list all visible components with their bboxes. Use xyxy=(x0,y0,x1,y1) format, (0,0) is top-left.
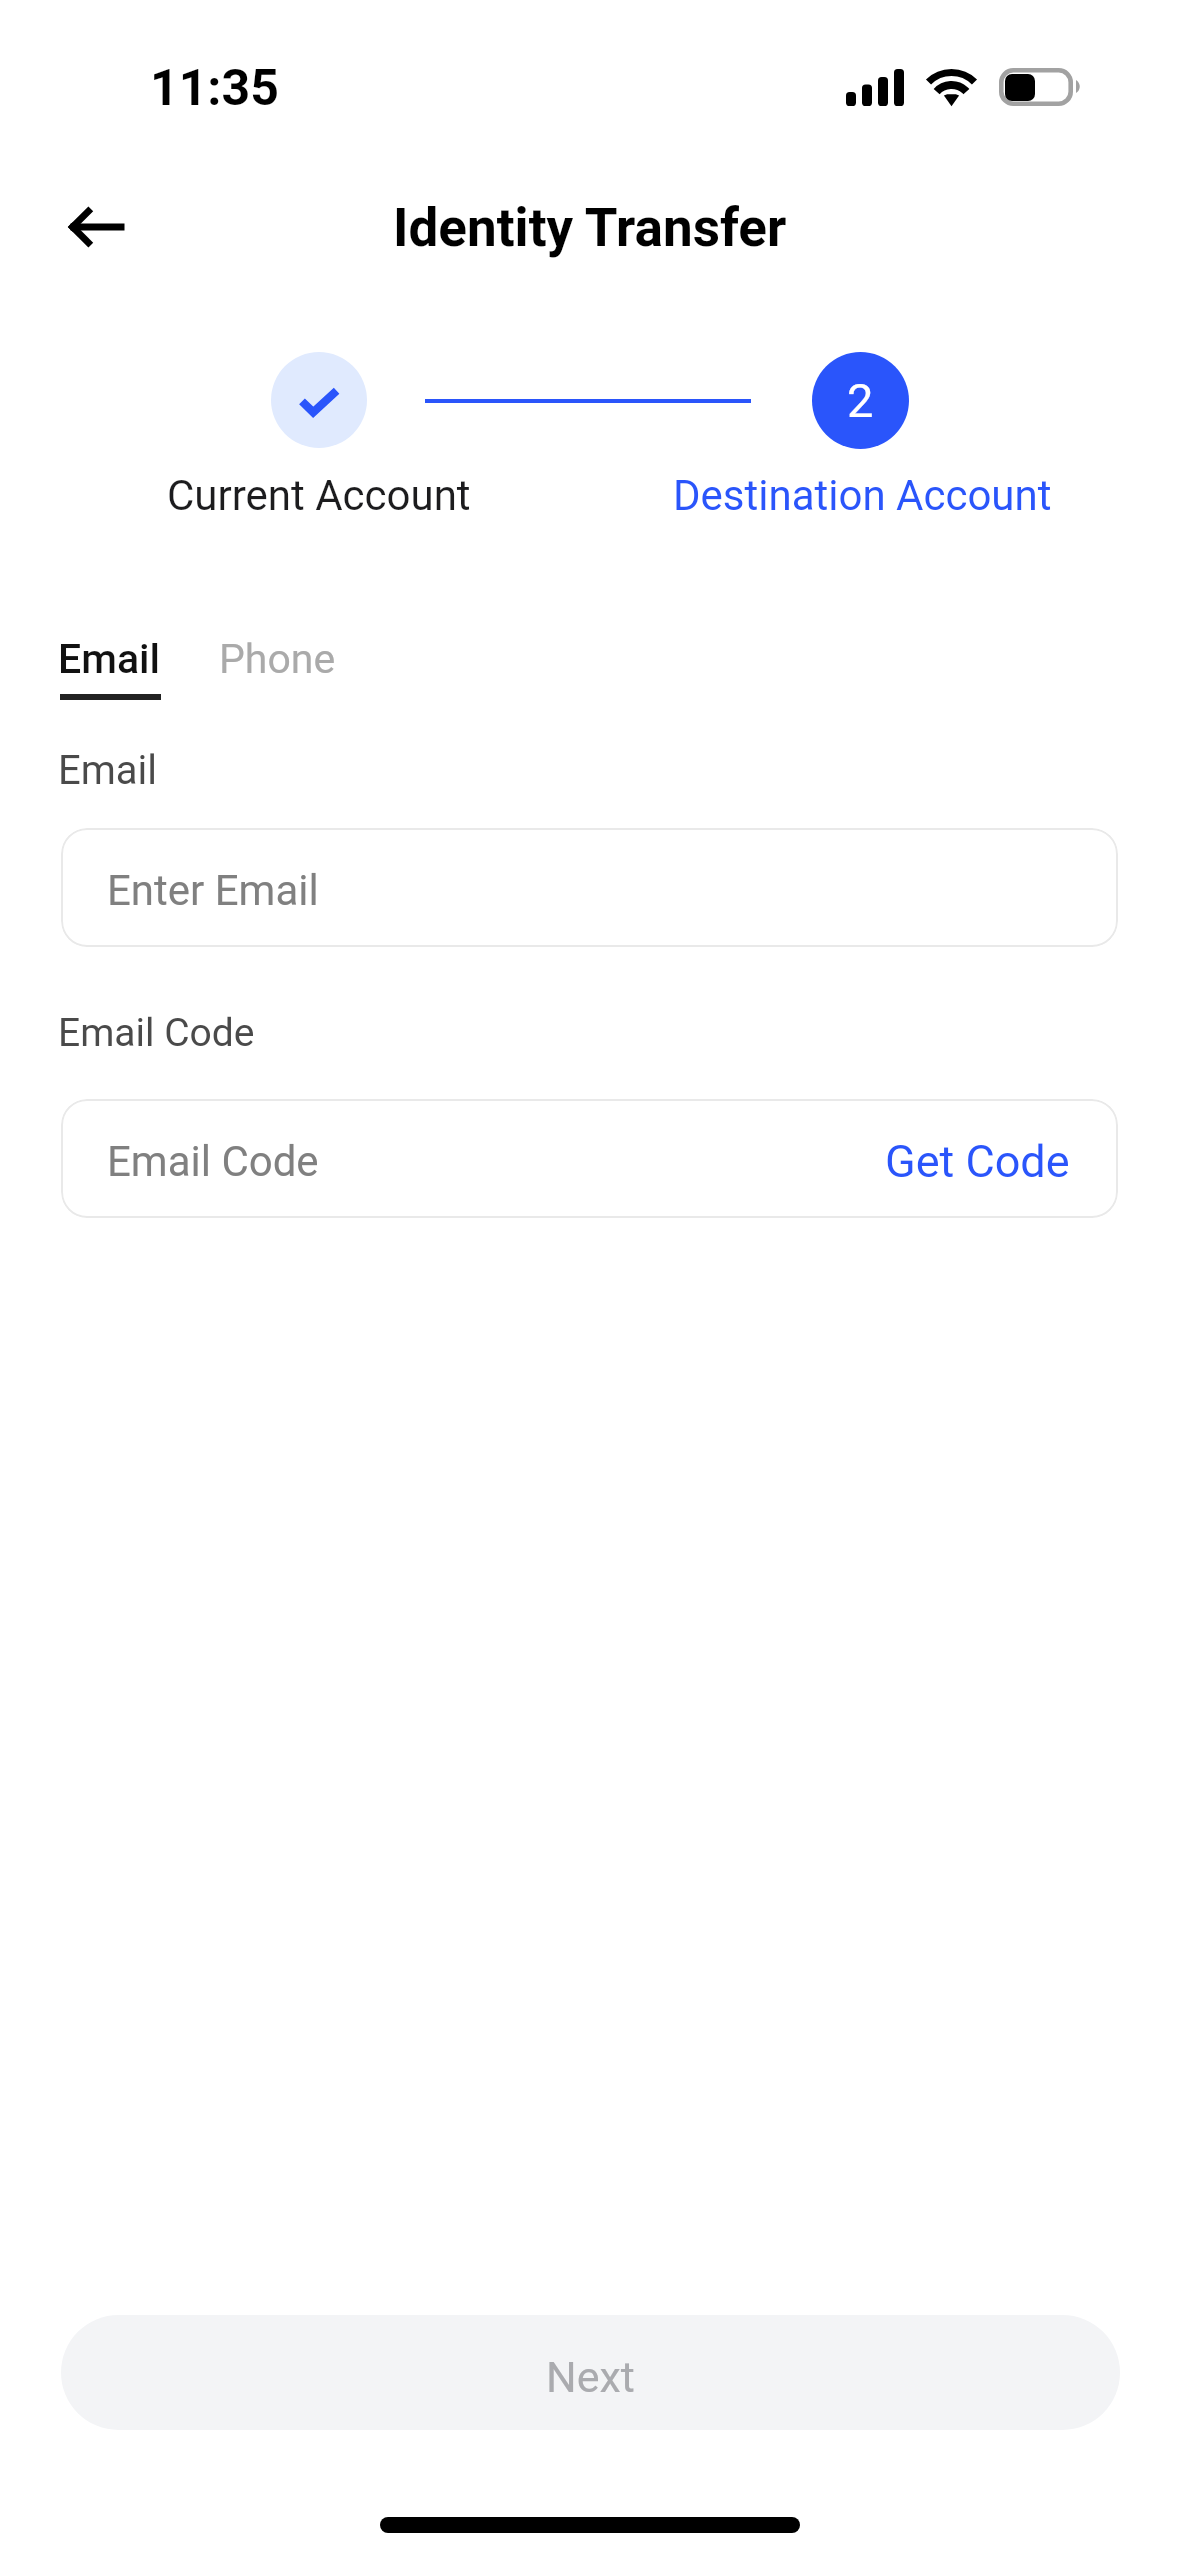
staticText: Current Account xyxy=(167,471,471,520)
staticText: Identity Transfer xyxy=(393,197,787,259)
button[interactable]: Current Account step completed xyxy=(271,352,367,448)
button[interactable]: Get Code xyxy=(885,1135,1070,1188)
button[interactable]: Phone xyxy=(219,620,337,720)
button[interactable]: Back xyxy=(41,171,153,283)
staticText: Email xyxy=(58,747,158,794)
staticText: 11:35 xyxy=(150,59,279,118)
staticText: Email Code xyxy=(58,1010,255,1056)
button[interactable]: Next xyxy=(61,2315,1120,2430)
staticText: Email Code xyxy=(107,1137,319,1186)
other: Battery xyxy=(997,66,1083,108)
staticText: Enter Email xyxy=(107,866,319,915)
staticText: Phone xyxy=(219,635,336,683)
button[interactable]: 2 xyxy=(812,352,909,449)
staticText: 2 xyxy=(847,373,874,428)
staticText: Next xyxy=(546,2352,635,2402)
button[interactable]: Email xyxy=(58,620,163,706)
button[interactable]: Enter Email xyxy=(61,828,1118,947)
other: Wi-Fi xyxy=(926,69,978,109)
other: Cellular signal xyxy=(846,69,906,107)
button[interactable]: Email Code xyxy=(61,1099,1118,1218)
staticText: Email xyxy=(58,635,161,683)
staticText: Destination Account xyxy=(673,471,1052,520)
staticText: Get Code xyxy=(885,1135,1070,1188)
